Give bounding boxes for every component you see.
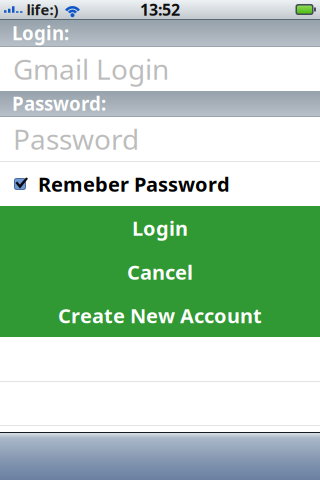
button[interactable]: Remeber Password [0, 162, 320, 206]
staticText: Password [13, 120, 139, 158]
staticText: Gmail Login [13, 50, 169, 88]
button[interactable]: Gmail Login [0, 47, 320, 91]
staticText: Login: [12, 21, 69, 45]
button[interactable]: Login [0, 206, 320, 250]
staticText: Password: [12, 91, 106, 116]
button[interactable]: Password [0, 117, 320, 161]
staticText: Cancel [127, 259, 193, 285]
button[interactable]: Create New Account [0, 294, 320, 337]
staticText: Create New Account [58, 302, 262, 329]
button[interactable]: Cancel [0, 250, 320, 294]
staticText: 13:52 [140, 0, 180, 20]
staticText: Remeber Password [38, 171, 230, 197]
staticText: life:) [26, 0, 58, 19]
staticText: Login [132, 215, 188, 241]
